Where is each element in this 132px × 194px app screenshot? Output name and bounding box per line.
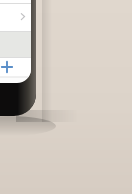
button[interactable]: Open item — [0, 0, 31, 4]
button[interactable]: Add — [0, 57, 31, 77]
button[interactable]: Open item — [0, 4, 31, 32]
